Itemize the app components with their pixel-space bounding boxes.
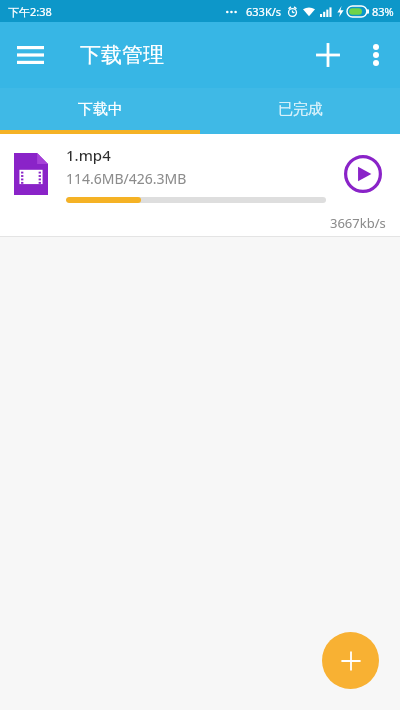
button[interactable]: More options (352, 31, 400, 79)
staticText: 已完成 (278, 100, 323, 119)
staticText: 633K/s (246, 4, 282, 19)
button[interactable]: Add download (322, 632, 379, 689)
button[interactable]: 下载中 (0, 88, 200, 130)
button[interactable]: Menu (6, 31, 54, 79)
staticText: 114.6MB/426.3MB (66, 169, 187, 188)
staticText: 3667kb/s (330, 214, 386, 232)
button[interactable]: Add (304, 31, 352, 79)
button[interactable]: Resume download (340, 151, 386, 197)
staticText: 下载中 (78, 100, 123, 119)
staticText: 1.mp4 (66, 145, 111, 165)
button[interactable]: 1.mp4 (0, 134, 400, 237)
button[interactable]: 已完成 (200, 88, 400, 130)
staticText: 下载管理 (80, 42, 164, 68)
staticText: 下午2:38 (8, 4, 52, 19)
staticText: 83% (372, 4, 394, 19)
